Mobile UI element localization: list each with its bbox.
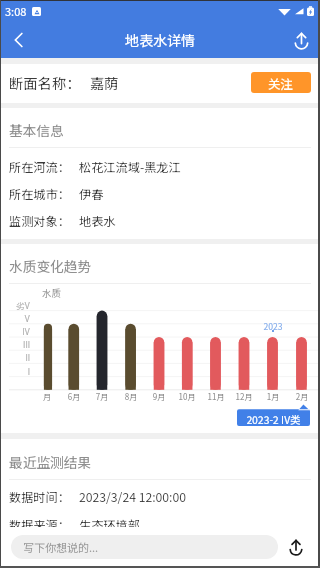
- staticText: 2023/3/24 12:00:00: [79, 488, 186, 506]
- staticText: 劣V: [4, 301, 30, 312]
- staticText: 数据来源：: [9, 516, 70, 534]
- staticText: 伊春: [79, 185, 104, 203]
- button[interactable]: 写下你想说的...: [11, 535, 278, 559]
- button[interactable]: Share: [278, 535, 314, 559]
- staticText: 10月: [174, 391, 200, 403]
- staticText: 所在河流：: [9, 158, 70, 176]
- staticText: 11月: [203, 391, 229, 403]
- staticText: 基本信息: [9, 120, 64, 140]
- staticText: 最近监测结果: [9, 452, 92, 472]
- staticText: 2023-2 IV类: [237, 412, 310, 427]
- staticText: 3:08: [5, 3, 27, 19]
- staticText: 生态环境部: [79, 516, 140, 534]
- staticText: 写下你想说的...: [23, 539, 99, 555]
- staticText: 8月: [118, 391, 144, 403]
- staticText: 7月: [89, 391, 115, 403]
- staticText: 数据时间：: [9, 488, 70, 506]
- staticText: 水质变化趋势: [9, 256, 92, 276]
- staticText: 2月: [289, 391, 315, 403]
- staticText: 水质: [42, 286, 62, 300]
- button[interactable]: Back: [0, 22, 38, 58]
- staticText: 关注: [268, 74, 294, 92]
- button[interactable]: Share: [282, 22, 320, 58]
- staticText: V: [4, 314, 30, 324]
- staticText: IV: [4, 327, 30, 337]
- button[interactable]: 关注: [251, 72, 311, 93]
- staticText: III: [4, 340, 30, 350]
- staticText: 所在城市：: [9, 185, 70, 203]
- staticText: 12月: [231, 391, 257, 403]
- staticText: 地表水详情: [125, 30, 195, 50]
- staticText: 嘉荫: [90, 72, 119, 93]
- staticText: I: [4, 367, 30, 377]
- staticText: 地表水: [79, 212, 116, 230]
- staticText: 月: [34, 391, 60, 403]
- staticText: II: [4, 353, 30, 363]
- staticText: 断面名称：: [9, 72, 81, 93]
- staticText: 2023: [253, 320, 293, 332]
- staticText: 9月: [146, 391, 172, 403]
- staticText: 1月: [260, 391, 286, 403]
- staticText: 监测对象：: [9, 212, 70, 230]
- button[interactable]: 断面名称：: [0, 64, 320, 103]
- staticText: 6月: [61, 391, 87, 403]
- staticText: 松花江流域-黑龙江: [79, 158, 181, 176]
